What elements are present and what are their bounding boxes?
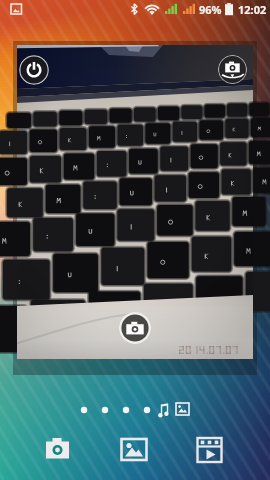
button[interactable]: Video player xyxy=(192,432,228,468)
button[interactable] xyxy=(13,41,257,375)
button[interactable]: Power off camera xyxy=(19,55,49,85)
button[interactable]: Take photo xyxy=(119,312,151,344)
staticText: 12:02 xyxy=(238,2,267,17)
button[interactable]: Gallery xyxy=(116,432,152,468)
button[interactable]: Switch camera xyxy=(218,55,247,84)
button[interactable]: Camera xyxy=(40,432,76,468)
staticText: 96% xyxy=(199,2,222,17)
button[interactable]: Camera viewfinder xyxy=(17,45,253,359)
